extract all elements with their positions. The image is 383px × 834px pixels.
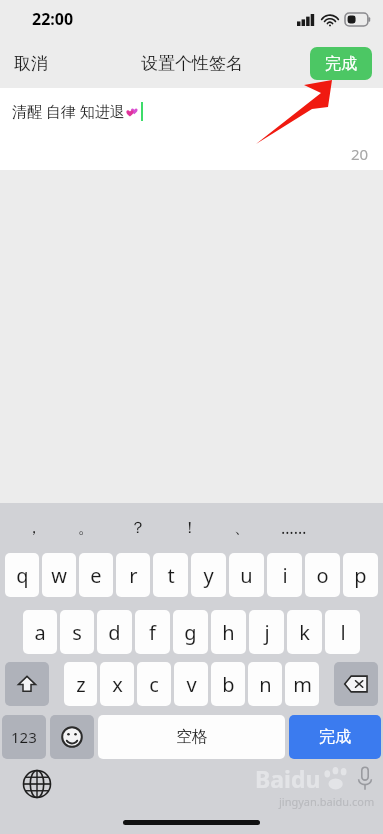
staticText: du [291,763,321,794]
button[interactable]: k [287,610,322,654]
staticText: p [354,562,367,589]
button[interactable]: r [116,553,150,597]
button[interactable]: 空格 [98,715,285,759]
staticText: 22:00 [32,8,74,30]
button[interactable]: ， [8,508,60,548]
staticText: q [16,562,29,589]
staticText: l [340,619,346,646]
staticText: Bai [255,763,291,794]
button[interactable]: o [305,553,340,597]
button[interactable]: x [100,662,134,706]
staticText: x [112,671,123,698]
staticText: d [108,619,121,646]
staticText: n [259,671,272,698]
staticText: s [72,619,82,646]
button[interactable]: i [267,553,302,597]
staticText: c [149,671,159,698]
staticText: w [51,562,67,589]
button[interactable]: f [135,610,170,654]
button[interactable]: h [211,610,246,654]
button[interactable]: y [191,553,226,597]
button[interactable]: m [285,662,319,706]
staticText: 设置个性签名 [141,53,243,74]
button[interactable]: Emoji [50,715,94,759]
staticText: o [316,562,329,589]
button[interactable]: d [97,610,132,654]
staticText: ， [26,518,42,538]
staticText: 。 [78,518,94,538]
button[interactable]: t [153,553,188,597]
button[interactable]: …… [268,508,320,548]
staticText: 空格 [176,727,208,747]
button[interactable]: p [343,553,378,597]
staticText: 20 [351,144,369,164]
button[interactable]: a [23,610,57,654]
staticText: 完成 [325,54,357,74]
staticText: jingyan.baidu.com [279,794,375,809]
staticText: e [90,562,102,589]
button[interactable]: 取消 [0,45,62,82]
button[interactable]: l [325,610,360,654]
button[interactable]: 123 [2,715,46,759]
staticText: h [222,619,235,646]
staticText: r [129,562,138,589]
button[interactable]: Backspace [334,662,378,706]
staticText: a [34,619,46,646]
staticText: ？ [130,518,146,538]
staticText: t [167,562,175,589]
button[interactable]: c [137,662,171,706]
staticText: v [186,671,197,698]
staticText: 取消 [14,53,48,74]
button[interactable]: q [5,553,39,597]
staticText: y [203,562,214,589]
button[interactable]: b [211,662,245,706]
button[interactable]: ？ [112,508,164,548]
staticText: 、 [234,518,250,538]
button[interactable]: Shift [5,662,49,706]
button[interactable]: 完成 [310,47,372,80]
staticText: k [299,619,310,646]
button[interactable]: g [173,610,208,654]
staticText: m [293,671,312,698]
button[interactable]: n [248,662,282,706]
staticText: i [282,562,288,589]
staticText: 123 [11,727,37,747]
button[interactable]: s [60,610,94,654]
staticText: 完成 [319,727,351,747]
staticText: f [149,619,156,646]
button[interactable]: v [174,662,208,706]
staticText: ！ [182,518,198,538]
button[interactable]: ！ [164,508,216,548]
staticText: …… [281,517,307,539]
button[interactable]: 完成 [289,715,381,759]
staticText: b [222,671,235,698]
button[interactable]: w [42,553,76,597]
staticText: 清醒 自律 知进退 [12,101,125,121]
staticText: u [240,562,253,589]
button[interactable]: 、 [216,508,268,548]
button[interactable]: 。 [60,508,112,548]
button[interactable]: j [249,610,284,654]
staticText: g [184,619,197,646]
staticText: z [76,671,86,698]
button[interactable]: z [64,662,97,706]
button[interactable]: u [229,553,264,597]
staticText: j [264,619,270,646]
button[interactable]: e [79,553,113,597]
button[interactable]: Change keyboard [22,769,52,799]
